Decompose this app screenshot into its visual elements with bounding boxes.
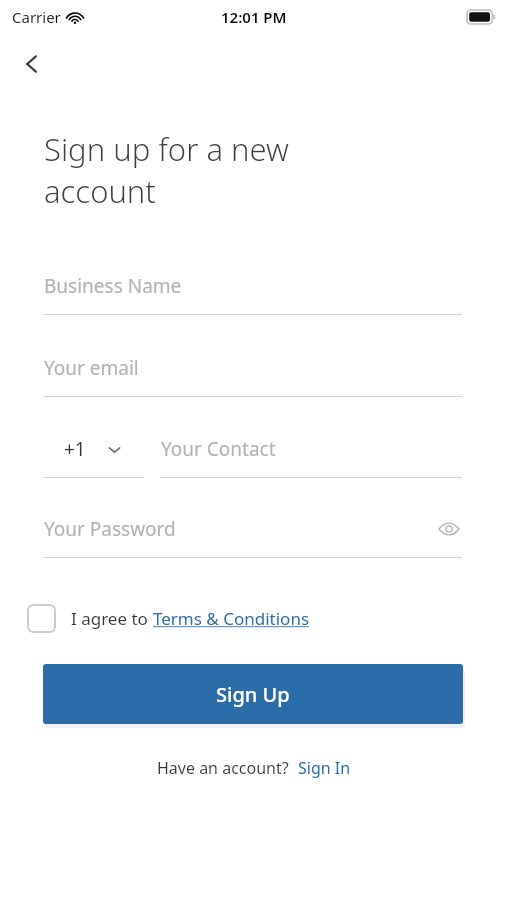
staticText: Business Name xyxy=(44,273,182,299)
button[interactable]: Business Name xyxy=(44,271,462,315)
staticText: 12:01 PM xyxy=(221,7,287,27)
staticText: Your Password xyxy=(44,516,176,542)
staticText: +1 xyxy=(64,436,86,462)
staticText: Sign In xyxy=(298,757,351,779)
staticText: Your Contact xyxy=(161,436,276,462)
button[interactable]: I agree to xyxy=(27,604,316,633)
button[interactable]: Your email xyxy=(44,353,462,397)
button[interactable]: Back xyxy=(8,40,56,88)
button[interactable]: Sign In xyxy=(298,757,351,779)
staticText: Sign up for a new xyxy=(44,128,289,170)
staticText: Carrier xyxy=(12,7,61,27)
staticText: Your email xyxy=(44,355,139,381)
button[interactable]: +1 xyxy=(44,434,144,478)
staticText: I agree to xyxy=(71,607,153,630)
staticText: Have an account? xyxy=(157,757,298,779)
button[interactable]: Your Contact xyxy=(161,434,462,478)
staticText: account xyxy=(44,170,156,212)
staticText: Terms & Conditions xyxy=(153,607,310,630)
staticText: Sign Up xyxy=(216,681,290,708)
button[interactable]: Show password xyxy=(436,516,462,542)
button[interactable]: Your Password xyxy=(44,514,462,558)
button[interactable]: Sign Up xyxy=(43,664,463,724)
